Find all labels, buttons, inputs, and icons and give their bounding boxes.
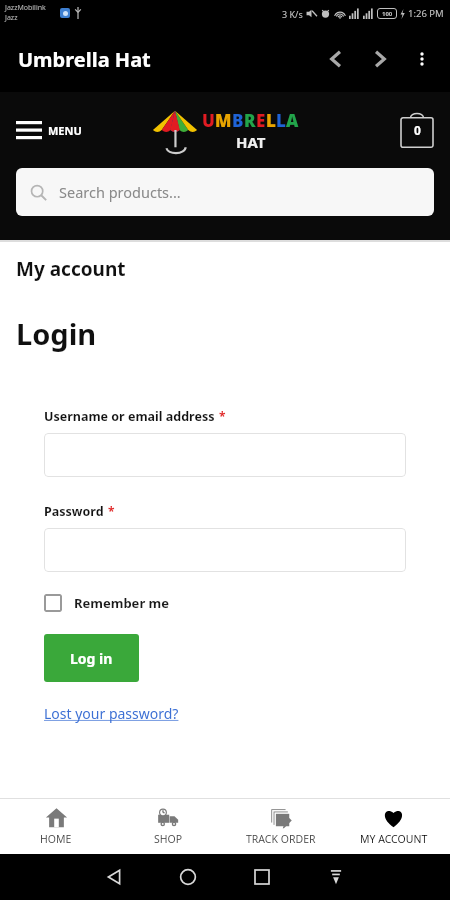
button[interactable]: TRACK ORDER: [224, 798, 337, 854]
staticText: U: [202, 109, 215, 132]
staticText: 1:26 PM: [408, 7, 444, 20]
staticText: Log in: [70, 649, 113, 668]
button[interactable]: SHOP: [112, 798, 224, 854]
staticText: HAT: [236, 132, 266, 152]
staticText: JazzMobilink: [5, 3, 46, 13]
staticText: HOME: [40, 832, 72, 846]
staticText: L: [266, 109, 276, 132]
button[interactable]: Hide navigation bar: [316, 857, 356, 897]
staticText: My account: [16, 256, 126, 282]
button[interactable]: Log in: [44, 634, 139, 682]
button[interactable]: Remember me: [44, 594, 170, 612]
staticText: 100: [382, 10, 393, 18]
staticText: SHOP: [154, 832, 183, 846]
staticText: R: [244, 109, 256, 132]
staticText: 3 K/s: [282, 8, 303, 20]
staticText: Umbrella Hat: [18, 46, 151, 73]
button[interactable]: Back: [314, 37, 358, 81]
button[interactable]: MENU: [16, 121, 82, 139]
button[interactable]: Cart, 0 items: [400, 112, 434, 148]
button[interactable]: Back: [94, 857, 134, 897]
button[interactable]: Forward: [358, 37, 402, 81]
button[interactable]: More options: [402, 39, 442, 79]
button[interactable]: Home: [168, 857, 208, 897]
staticText: TRACK ORDER: [246, 832, 316, 846]
staticText: *: [108, 503, 115, 519]
staticText: L: [276, 109, 286, 132]
staticText: *: [219, 408, 226, 424]
staticText: Lost your password?: [44, 704, 179, 723]
staticText: 0: [414, 122, 421, 138]
staticText: Jazz: [5, 13, 18, 23]
staticText: MENU: [48, 123, 82, 138]
staticText: Password: [44, 503, 104, 520]
staticText: Search products...: [59, 182, 181, 202]
staticText: M: [215, 109, 232, 132]
button[interactable]: Recent apps: [242, 857, 282, 897]
button[interactable]: [44, 433, 406, 477]
button[interactable]: Search products...: [16, 168, 434, 216]
staticText: Login: [16, 314, 97, 353]
button[interactable]: MY ACCOUNT: [337, 798, 450, 854]
button[interactable]: HOME: [0, 798, 112, 854]
button[interactable]: Lost your password?: [44, 704, 179, 723]
staticText: MY ACCOUNT: [360, 832, 428, 846]
button[interactable]: [44, 528, 406, 572]
staticText: A: [286, 109, 299, 132]
staticText: E: [256, 109, 266, 132]
staticText: Remember me: [74, 594, 170, 612]
staticText: Username or email address: [44, 408, 215, 425]
staticText: B: [232, 109, 244, 132]
